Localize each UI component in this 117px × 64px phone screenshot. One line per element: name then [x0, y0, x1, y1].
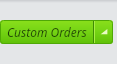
button[interactable]: Show more options	[95, 20, 113, 44]
button[interactable]: Custom Orders	[0, 20, 93, 44]
staticText: Custom Orders	[7, 24, 87, 40]
